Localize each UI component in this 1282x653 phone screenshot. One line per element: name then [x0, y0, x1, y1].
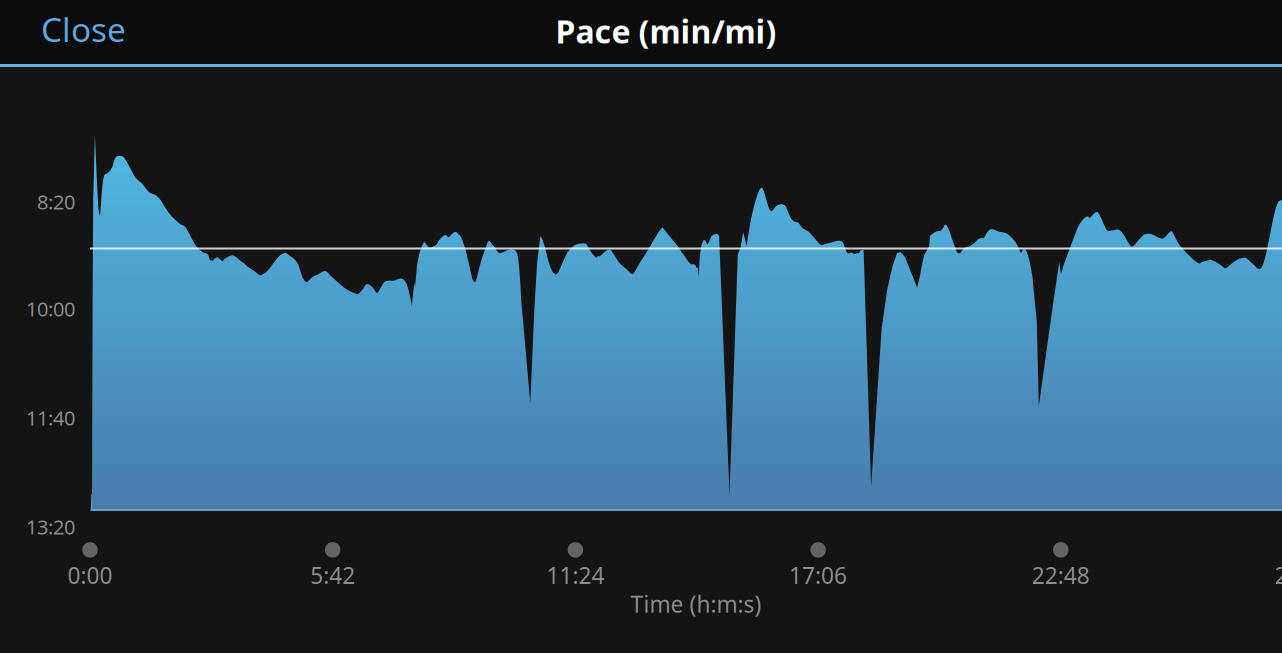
staticText: 10:00 [26, 295, 75, 322]
staticText: 11:24 [546, 560, 604, 590]
staticText: 28:30 [1274, 560, 1282, 590]
staticText: 11:40 [26, 404, 75, 431]
staticText: Time (h:m:s) [630, 589, 761, 619]
staticText: 8:20 [37, 188, 75, 215]
staticText: 5:42 [310, 560, 355, 590]
staticText: Close [41, 7, 126, 51]
staticText: 17:06 [789, 560, 847, 590]
staticText: Pace (min/mi) [555, 10, 776, 52]
staticText: 13:20 [26, 513, 75, 540]
staticText: 22:48 [1032, 560, 1090, 590]
staticText: 0:00 [67, 560, 112, 590]
button[interactable]: Close [27, 0, 140, 62]
